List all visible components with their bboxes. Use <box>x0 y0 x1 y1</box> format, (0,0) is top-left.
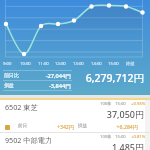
staticText: 損益 <box>4 82 14 88</box>
staticText: 9:00 <box>3 61 12 67</box>
staticText: 10:00 <box>20 61 31 67</box>
staticText: 終値 <box>126 61 135 66</box>
staticText: +0.93% <box>131 101 146 107</box>
staticText: 13:00 <box>73 61 84 67</box>
staticText: 37,050円 <box>44 108 144 120</box>
button[interactable]: 6502 東芝 <box>0 100 150 132</box>
staticText: +0.81% <box>131 134 146 140</box>
staticText: 15:00 <box>108 61 119 67</box>
staticText: 6502 東芝 <box>5 102 38 112</box>
staticText: 14:00 <box>91 61 102 67</box>
staticText: 15:00 <box>115 101 126 107</box>
button[interactable]: 9502 中部電力 <box>0 133 150 150</box>
staticText: 11:00 <box>38 61 49 67</box>
staticText: -3,844円 <box>0 82 71 90</box>
staticText: 前日 <box>18 123 28 129</box>
staticText: 6,279,712円 <box>44 71 144 85</box>
staticText: 9502 中部電力 <box>5 135 53 145</box>
staticText: 12:00 <box>55 61 66 67</box>
staticText: 1,485円 <box>44 141 144 150</box>
staticText: +342円 <box>0 123 74 130</box>
staticText: 100株 <box>100 134 112 140</box>
other: Holding <box>5 125 10 130</box>
staticText: 100株 <box>100 101 112 107</box>
staticText: 15:00 <box>115 134 126 140</box>
staticText: 損益 <box>78 123 88 129</box>
staticText: -27,044円 <box>0 72 71 80</box>
staticText: 前日比 <box>4 72 19 78</box>
staticText: +6,284円 <box>38 123 138 130</box>
